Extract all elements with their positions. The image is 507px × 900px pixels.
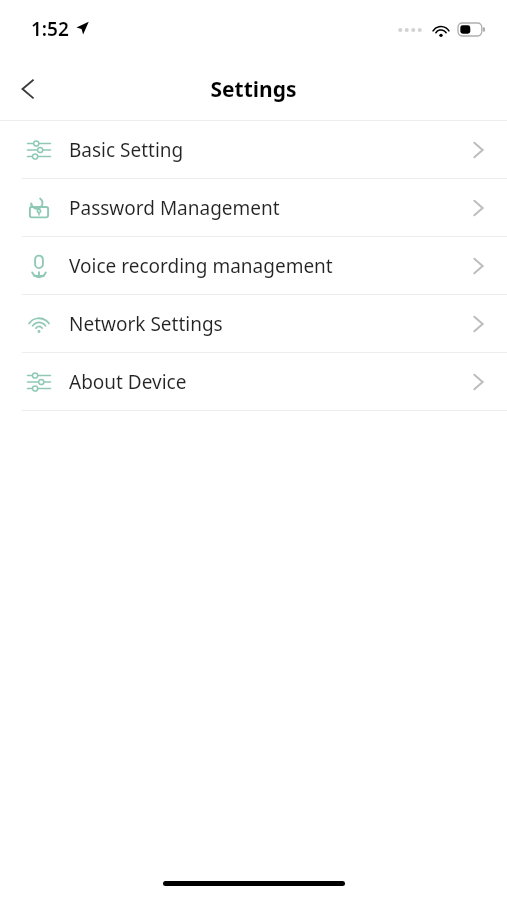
button[interactable]: About Device [0,353,507,410]
staticText: Voice recording management [69,253,333,279]
staticText: 1:52 [31,16,69,42]
staticText: Settings [210,75,297,104]
button[interactable]: Password Management [0,179,507,236]
button[interactable]: Basic Setting [0,121,507,178]
button[interactable]: Network Settings [0,295,507,352]
button[interactable]: Voice recording management [0,237,507,294]
button[interactable]: Back [0,61,56,117]
staticText: Network Settings [69,311,223,337]
staticText: Basic Setting [69,137,184,163]
staticText: Password Management [69,195,280,221]
staticText: About Device [69,369,187,395]
